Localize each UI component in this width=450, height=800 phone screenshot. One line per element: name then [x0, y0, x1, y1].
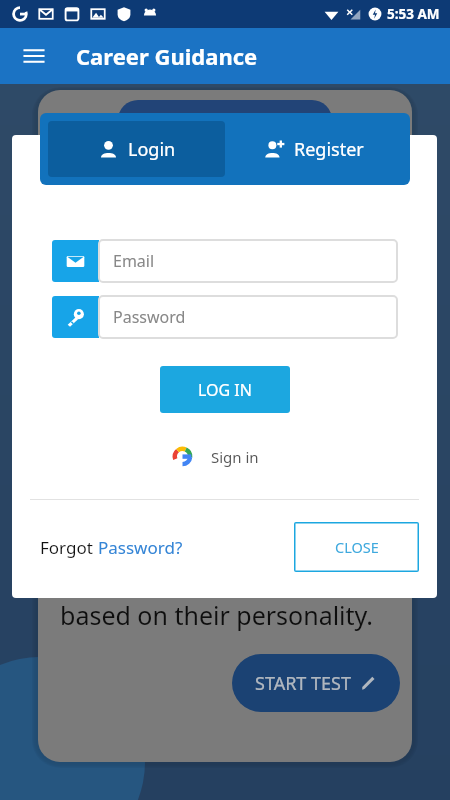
staticText: 5:53 AM: [387, 5, 440, 23]
staticText: Register: [294, 137, 364, 162]
button[interactable]: LOGIN / REGISTER: [118, 100, 332, 140]
staticText: Career Guidance: [76, 41, 258, 71]
staticText: Password: [113, 306, 186, 328]
button[interactable]: Register: [225, 121, 402, 177]
button[interactable]: Login: [48, 121, 225, 177]
staticText: LOG IN: [198, 379, 252, 401]
button[interactable]: LOG IN: [160, 366, 290, 413]
staticText: Sign in: [211, 447, 259, 467]
button[interactable]: Password: [52, 296, 397, 338]
button[interactable]: CLOSE: [294, 522, 419, 572]
button[interactable]: Email: [52, 240, 397, 282]
staticText: Login: [128, 137, 176, 162]
staticText: LOGIN / REGISTER: [171, 110, 301, 130]
staticText: based on their personality.: [60, 598, 374, 632]
button[interactable]: Sign in: [159, 436, 290, 477]
staticText: Forgot: [40, 536, 98, 559]
staticText: path and relevant education: [60, 558, 391, 592]
button[interactable]: Forgot: [40, 536, 183, 559]
staticText: Email: [113, 250, 155, 272]
button[interactable]: START TEST: [232, 654, 400, 712]
button[interactable]: Open navigation menu: [14, 36, 54, 76]
staticText: Password?: [98, 536, 183, 559]
staticText: START TEST: [255, 671, 351, 696]
staticText: CLOSE: [335, 537, 379, 557]
